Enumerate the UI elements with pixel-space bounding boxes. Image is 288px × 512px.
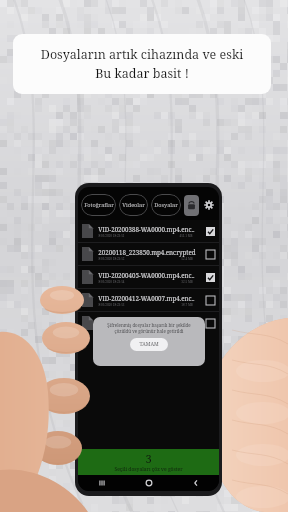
button[interactable]: 3	[78, 449, 219, 475]
staticText: 8/05/2020 18:23:57	[98, 326, 125, 330]
button[interactable]: 20200118_223850.mp4.encrypted	[78, 243, 219, 265]
staticText: 52.4 MB	[181, 257, 193, 261]
staticText: Videolar	[122, 201, 145, 209]
button[interactable]: Seçili değil	[206, 250, 215, 259]
staticText: VID-20200388-WA0000.mp4.enc..	[98, 225, 195, 233]
button[interactable]: VID-20200412-WA0007.mp4.enc..	[78, 289, 219, 311]
button[interactable]: Geri	[172, 475, 219, 491]
staticText: 8/05/2020 18:23:55	[98, 303, 125, 307]
staticText: 3	[145, 451, 152, 466]
button[interactable]: Seçili	[206, 227, 215, 236]
staticText: 8/05/2020 18:23:52	[98, 257, 125, 261]
staticText: 18.7 MB	[181, 303, 193, 307]
button[interactable]: Son uygulamalar	[78, 475, 125, 491]
staticText: Seçili dosyaları çöz ve göster	[114, 466, 183, 473]
staticText: Şifrelenmiş dosyalar başarılı bir şekild…	[107, 322, 191, 328]
button[interactable]: Ayarlar	[202, 198, 216, 212]
staticText: VID-20200405-WA0000.mp4.enc..	[98, 271, 195, 279]
staticText: çözüldü ve görünür hale getirildi	[114, 328, 184, 334]
button[interactable]: Ana ekran	[125, 475, 172, 491]
staticText: 451.1 MB	[179, 234, 193, 238]
button[interactable]: Seçili değil	[206, 319, 215, 328]
button[interactable]: VID-20200405-WA0000.mp4.enc..	[78, 266, 219, 288]
button[interactable]: Fotoğraflar	[81, 194, 116, 216]
button[interactable]: Seçili değil	[206, 296, 215, 305]
button[interactable]: Dosyalar	[151, 194, 181, 216]
button[interactable]: Videolar	[119, 194, 148, 216]
staticText: 8/05/2020 18:23:54	[98, 280, 125, 284]
button[interactable]: TAMAM	[130, 338, 168, 351]
staticText: TAMAM	[139, 341, 159, 348]
button[interactable]: VID-20200388-WA0000.mp4.enc..	[78, 220, 219, 242]
staticText: 20200118_223850.mp4.encrypted	[98, 248, 196, 256]
staticText: Dosyalar	[154, 201, 178, 209]
staticText: 20200120_104411.mp4.encrypted	[98, 317, 196, 325]
button[interactable]: Kilit	[184, 195, 199, 216]
button[interactable]: 20200120_104411.mp4.encrypted	[78, 312, 219, 334]
button[interactable]: Dosyaların artık cihazında ve eski yerle…	[13, 34, 271, 94]
staticText: 8/05/2020 18:23:51	[98, 234, 125, 238]
staticText: VID-20200412-WA0007.mp4.enc..	[98, 294, 195, 302]
staticText: Bu kadar basit !	[95, 65, 189, 82]
staticText: Fotoğraflar	[84, 201, 114, 209]
staticText: 77.2 MB	[181, 326, 193, 330]
button[interactable]: Seçili	[206, 273, 215, 282]
staticText: Dosyaların artık cihazında ve eski yerle…	[13, 46, 271, 63]
staticText: 32.5 MB	[181, 280, 193, 284]
